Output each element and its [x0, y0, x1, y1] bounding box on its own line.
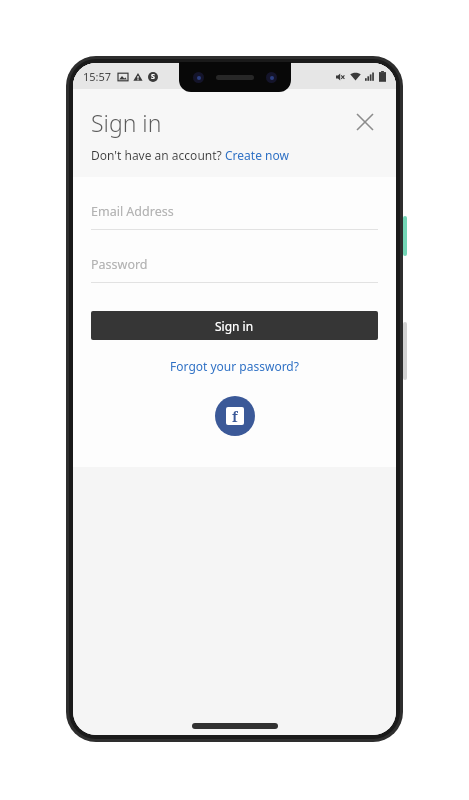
- button[interactable]: Close: [348, 105, 382, 139]
- button[interactable]: Sign in with Facebook: [215, 396, 255, 436]
- staticText: f: [232, 407, 238, 425]
- button[interactable]: Email Address: [91, 203, 378, 230]
- button[interactable]: Password: [91, 256, 378, 283]
- staticText: Email Address: [91, 203, 174, 220]
- staticText: Sign in: [91, 107, 162, 138]
- button[interactable]: Create now: [225, 147, 289, 163]
- staticText: Don't have an account?: [91, 147, 225, 163]
- staticText: 15:57: [83, 69, 112, 84]
- staticText: Create now: [225, 147, 289, 163]
- button[interactable]: Sign in: [91, 311, 378, 340]
- staticText: Forgot your password?: [170, 358, 299, 374]
- staticText: Password: [91, 256, 148, 273]
- staticText: S: [151, 72, 155, 82]
- staticText: Sign in: [215, 318, 254, 334]
- button[interactable]: Forgot your password?: [91, 358, 378, 374]
